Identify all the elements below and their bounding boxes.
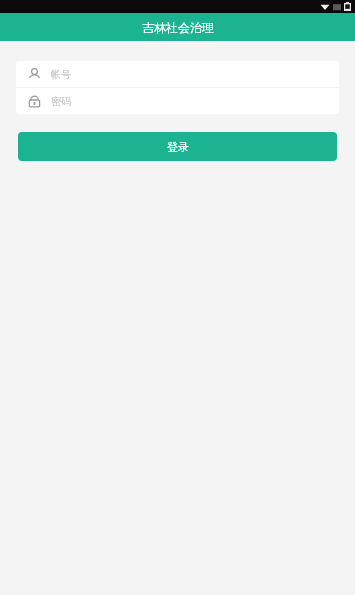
button[interactable]: 登录 [18, 132, 337, 161]
button[interactable]: Account [16, 61, 339, 87]
button[interactable]: Password [16, 88, 339, 114]
staticText: 帐号 [51, 68, 71, 81]
staticText: 登录 [167, 140, 189, 154]
staticText: 吉林社会治理 [142, 20, 214, 35]
staticText: 密码 [51, 95, 71, 108]
other: Password [27, 94, 42, 109]
other: Account [27, 67, 42, 82]
